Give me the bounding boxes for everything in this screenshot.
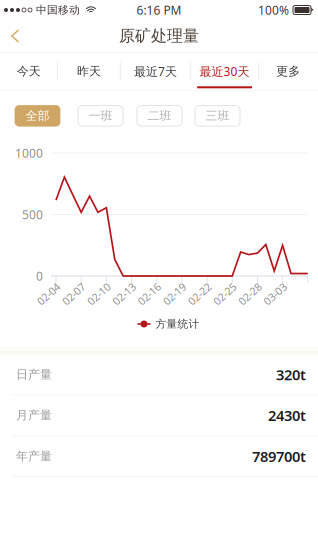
button[interactable]: Back [0, 20, 31, 51]
button[interactable]: 今天 [0, 54, 57, 88]
button[interactable]: 年产量 [0, 436, 318, 477]
staticText: 02-16 [136, 287, 163, 301]
staticText: 2430t [268, 406, 306, 425]
staticText: 二班 [147, 108, 171, 123]
staticText: 02-28 [236, 287, 263, 301]
button[interactable]: 日产量 [0, 354, 318, 395]
staticText: 原矿处理量 [119, 26, 199, 46]
staticText: 月产量 [16, 408, 52, 423]
staticText: 02-07 [60, 287, 87, 301]
staticText: 500 [22, 206, 43, 222]
staticText: 日产量 [16, 367, 52, 382]
button[interactable]: 最近7天 [120, 54, 190, 88]
staticText: 中国移动 [36, 3, 80, 16]
button[interactable]: 二班 [137, 106, 182, 126]
staticText: 年产量 [16, 449, 52, 464]
staticText: 全部 [25, 108, 49, 123]
staticText: 三班 [205, 108, 229, 123]
staticText: 1000 [15, 145, 43, 161]
staticText: 0 [36, 268, 43, 284]
button[interactable]: 月产量 [0, 395, 318, 436]
button[interactable]: 昨天 [58, 54, 120, 88]
button[interactable]: 三班 [195, 106, 240, 126]
staticText: 789700t [252, 446, 306, 466]
staticText: 02-13 [110, 287, 137, 301]
staticText: 方量统计 [155, 317, 199, 330]
staticText: 02-04 [35, 287, 62, 301]
staticText: 02-25 [211, 287, 238, 301]
staticText: 6:16 PM [136, 2, 181, 18]
button[interactable]: 最近30天 [191, 54, 258, 88]
staticText: 02-19 [161, 287, 188, 301]
staticText: 今天 [17, 64, 41, 79]
button[interactable]: 一班 [78, 106, 123, 126]
button[interactable]: 全部 [15, 106, 60, 126]
staticText: 昨天 [77, 64, 101, 79]
staticText: 320t [276, 365, 306, 384]
button[interactable]: 更多 [259, 54, 318, 88]
staticText: 最近7天 [134, 63, 177, 79]
staticText: 03-03 [262, 287, 289, 301]
staticText: 100% [258, 2, 289, 18]
staticText: 更多 [276, 64, 300, 79]
staticText: 02-10 [85, 287, 112, 301]
staticText: 02-22 [186, 287, 213, 301]
staticText: 最近30天 [200, 63, 250, 79]
staticText: 一班 [88, 108, 112, 123]
